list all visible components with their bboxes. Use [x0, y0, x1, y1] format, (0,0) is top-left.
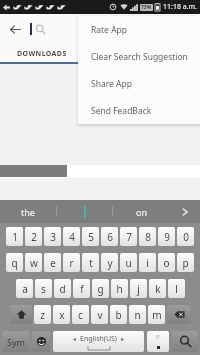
- button[interactable]: 2: [25, 227, 42, 246]
- staticText: 11:18 a.m.: [163, 2, 197, 12]
- staticText: Share App: [91, 78, 132, 90]
- button[interactable]: u: [120, 253, 137, 272]
- button[interactable]: a: [16, 279, 33, 298]
- button[interactable]: Space: [53, 331, 144, 352]
- staticText: 0: [183, 230, 189, 244]
- button[interactable]: b: [110, 305, 127, 324]
- staticText: English(US): [80, 334, 117, 344]
- button[interactable]: FAC: [84, 44, 144, 64]
- button[interactable]: o: [158, 253, 175, 272]
- button[interactable]: [57, 200, 112, 223]
- button[interactable]: w: [25, 253, 42, 272]
- staticText: 6: [107, 230, 113, 244]
- button[interactable]: k: [149, 279, 166, 298]
- staticText: p: [182, 256, 189, 270]
- staticText: z: [40, 308, 45, 322]
- staticText: 4: [69, 230, 75, 244]
- button[interactable]: m: [148, 305, 165, 324]
- button[interactable]: p: [177, 253, 194, 272]
- staticText: h: [116, 282, 123, 296]
- staticText: 8: [145, 230, 151, 244]
- button[interactable]: z: [34, 305, 51, 324]
- staticText: d: [59, 282, 66, 296]
- button[interactable]: Search: [172, 331, 198, 352]
- button[interactable]: 7: [120, 227, 137, 246]
- button[interactable]: j: [130, 279, 147, 298]
- staticText: y: [107, 256, 113, 270]
- staticText: q: [11, 256, 18, 270]
- staticText: r: [69, 256, 74, 270]
- button[interactable]: h: [111, 279, 128, 298]
- staticText: o: [163, 256, 170, 270]
- staticText: w: [30, 256, 38, 270]
- button[interactable]: f: [73, 279, 90, 298]
- staticText: DOWNLOADS: [17, 49, 67, 59]
- staticText: FAC: [107, 49, 122, 59]
- button[interactable]: Backspace: [167, 305, 191, 324]
- button[interactable]: 5: [82, 227, 99, 246]
- button[interactable]: Emoji: [32, 331, 50, 352]
- staticText: g: [97, 282, 104, 296]
- button[interactable]: 3: [44, 227, 61, 246]
- button[interactable]: the: [0, 200, 56, 223]
- button[interactable]: c: [72, 305, 89, 324]
- button[interactable]: d: [54, 279, 71, 298]
- staticText: u: [125, 256, 132, 270]
- button[interactable]: q: [6, 253, 23, 272]
- button[interactable]: 8: [139, 227, 156, 246]
- staticText: 73%: [141, 4, 152, 11]
- button[interactable]: n: [129, 305, 146, 324]
- staticText: 7: [126, 230, 132, 244]
- button[interactable]: 1: [6, 227, 23, 246]
- staticText: 1: [12, 230, 18, 244]
- staticText: m: [152, 308, 162, 322]
- button[interactable]: l: [168, 279, 185, 298]
- staticText: Send FeadBack: [91, 105, 152, 117]
- button[interactable]: Shift: [10, 305, 32, 324]
- staticText: a: [22, 282, 28, 296]
- button[interactable]: e: [44, 253, 61, 272]
- staticText: v: [97, 308, 103, 322]
- button[interactable]: Clear Search Suggestion: [78, 43, 200, 70]
- staticText: k: [155, 282, 161, 296]
- button[interactable]: DOWNLOADS: [0, 44, 84, 64]
- staticText: e: [50, 256, 56, 270]
- staticText: n: [134, 308, 141, 322]
- button[interactable]: Send FeadBack: [78, 97, 200, 124]
- button[interactable]: x: [53, 305, 70, 324]
- staticText: l: [175, 282, 178, 296]
- staticText: j: [137, 282, 140, 296]
- button[interactable]: s: [35, 279, 52, 298]
- staticText: s: [41, 282, 46, 296]
- staticText: Clear Search Suggestion: [91, 51, 188, 63]
- staticText: t: [89, 256, 93, 270]
- staticText: 3: [50, 230, 56, 244]
- staticText: Sym: [7, 336, 25, 348]
- button[interactable]: More suggestions: [170, 200, 200, 223]
- staticText: c: [78, 308, 83, 322]
- button[interactable]: Sym: [2, 331, 29, 352]
- button[interactable]: 9: [158, 227, 175, 246]
- button[interactable]: on: [113, 200, 170, 223]
- staticText: on: [136, 206, 148, 218]
- button[interactable]: g: [92, 279, 109, 298]
- button[interactable]: i: [139, 253, 156, 272]
- staticText: 2: [31, 230, 37, 244]
- button[interactable]: 0: [177, 227, 194, 246]
- button[interactable]: Period: [147, 331, 169, 352]
- staticText: f: [80, 282, 84, 296]
- staticText: x: [59, 308, 65, 322]
- button[interactable]: Share App: [78, 70, 200, 97]
- button[interactable]: 6: [101, 227, 118, 246]
- button[interactable]: t: [82, 253, 99, 272]
- button[interactable]: r: [63, 253, 80, 272]
- staticText: b: [115, 308, 122, 322]
- button[interactable]: Navigate up: [0, 14, 30, 44]
- button[interactable]: 4: [63, 227, 80, 246]
- button[interactable]: y: [101, 253, 118, 272]
- button[interactable]: Rate App: [78, 16, 200, 43]
- staticText: 5: [88, 230, 94, 244]
- staticText: 9: [164, 230, 170, 244]
- button[interactable]: v: [91, 305, 108, 324]
- staticText: the: [21, 206, 35, 218]
